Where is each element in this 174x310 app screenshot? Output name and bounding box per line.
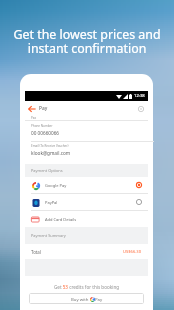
button[interactable]: Buy with (29, 293, 144, 304)
button[interactable]: Add Card Details (31, 211, 142, 227)
staticText: Pay (39, 105, 48, 112)
staticText: Pay (95, 296, 103, 302)
button[interactable]: Help (134, 101, 148, 116)
staticText: Payment Summary (31, 233, 66, 238)
staticText: Buy with (71, 296, 90, 302)
staticText: Add Card Details (45, 217, 77, 222)
button[interactable]: Google Pay (31, 177, 142, 193)
staticText: Total (31, 249, 41, 255)
staticText: Get 53 credits for this booking (25, 284, 148, 290)
staticText: klook@gmail.com (31, 150, 71, 156)
button[interactable]: Back (25, 101, 39, 116)
staticText: Pax (31, 116, 37, 120)
button[interactable]: PayPal (31, 194, 142, 210)
staticText: Payment Options (31, 168, 63, 173)
staticText: Google Pay (45, 183, 67, 188)
staticText: Phone Number (31, 124, 53, 128)
staticText: Get the lowest prices and instant confir… (0, 26, 174, 57)
staticText: Email (To Receive Voucher) (31, 144, 69, 148)
staticText: PayPal (45, 200, 58, 205)
staticText: 00 00660066 (31, 130, 60, 136)
staticText: 12:38 (134, 93, 145, 99)
staticText: US$66.30 (123, 249, 142, 255)
